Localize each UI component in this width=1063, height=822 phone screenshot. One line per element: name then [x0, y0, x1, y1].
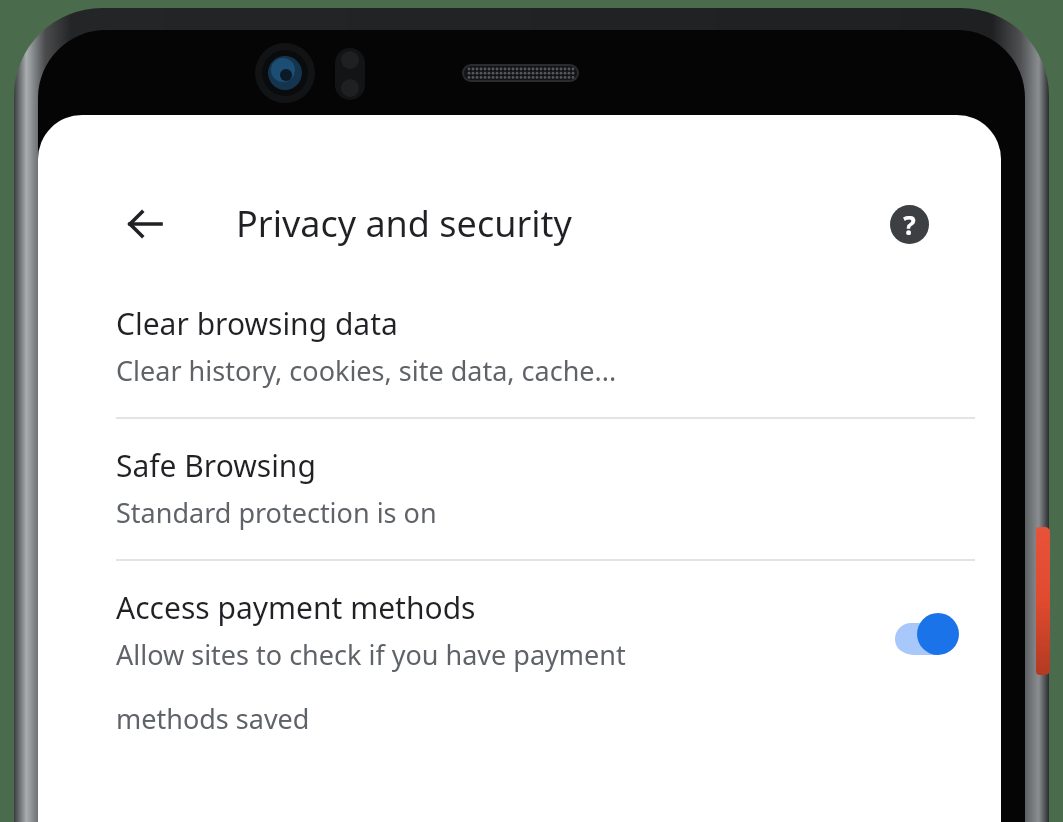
staticText: Privacy and security — [236, 199, 572, 248]
staticText: Safe Browsing — [116, 445, 316, 486]
staticText: Allow sites to check if you have payment — [116, 636, 626, 673]
button[interactable]: Clear browsing data — [38, 280, 1001, 417]
button[interactable]: Access payment methods — [38, 561, 1001, 737]
staticText: Clear history, cookies, site data, cache… — [116, 352, 617, 389]
staticText: Standard protection is on — [116, 494, 437, 531]
button[interactable]: Safe Browsing — [38, 419, 1001, 559]
button[interactable]: Access payment methods toggle — [891, 609, 961, 655]
button[interactable]: Power — [1036, 527, 1050, 675]
staticText: methods saved — [116, 700, 310, 737]
staticText: Clear browsing data — [116, 303, 398, 344]
button[interactable]: Back — [112, 191, 178, 257]
staticText: ? — [903, 207, 916, 242]
staticText: Access payment methods — [116, 587, 476, 628]
button[interactable]: Help — [873, 188, 945, 260]
